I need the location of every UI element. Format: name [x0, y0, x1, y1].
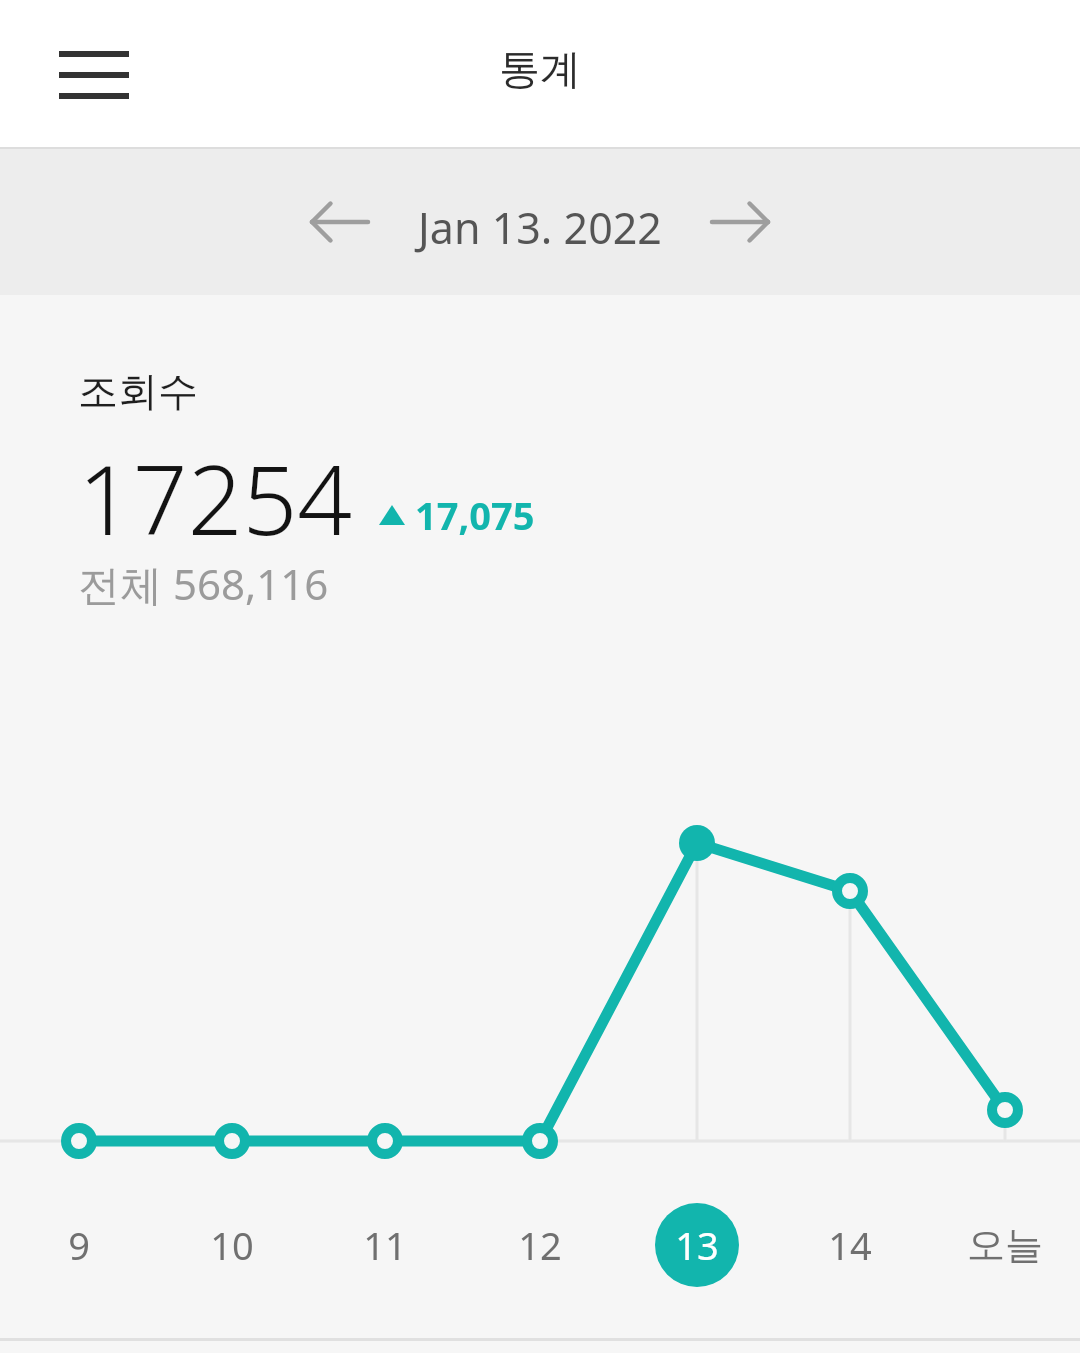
staticText: 통계 [0, 44, 1080, 96]
button[interactable]: 12 [480, 1185, 600, 1305]
button[interactable]: 오늘 [945, 1185, 1065, 1305]
button[interactable]: 14 [790, 1185, 910, 1305]
staticText: 13 [675, 1219, 719, 1271]
staticText: 11 [363, 1219, 407, 1271]
staticText: 오늘 [967, 1221, 1043, 1269]
staticText: 9 [68, 1219, 90, 1271]
staticText: 12 [518, 1219, 562, 1271]
staticText: 10 [210, 1219, 254, 1271]
button[interactable]: 10 [172, 1185, 292, 1305]
button[interactable]: 11 [325, 1185, 445, 1305]
staticText: Jan 13. 2022 [0, 198, 1080, 257]
button[interactable]: Menu [34, 26, 154, 124]
staticText: 조회수 [78, 366, 198, 416]
staticText: 17,075 [415, 489, 535, 541]
staticText: 전체 568,116 [78, 555, 329, 612]
staticText: 17254 [78, 432, 353, 563]
button[interactable]: Next day [692, 178, 788, 266]
staticText: 14 [828, 1219, 872, 1271]
button[interactable]: 13 [637, 1185, 757, 1305]
button[interactable]: 9 [19, 1185, 139, 1305]
button[interactable]: Previous day [292, 178, 388, 266]
